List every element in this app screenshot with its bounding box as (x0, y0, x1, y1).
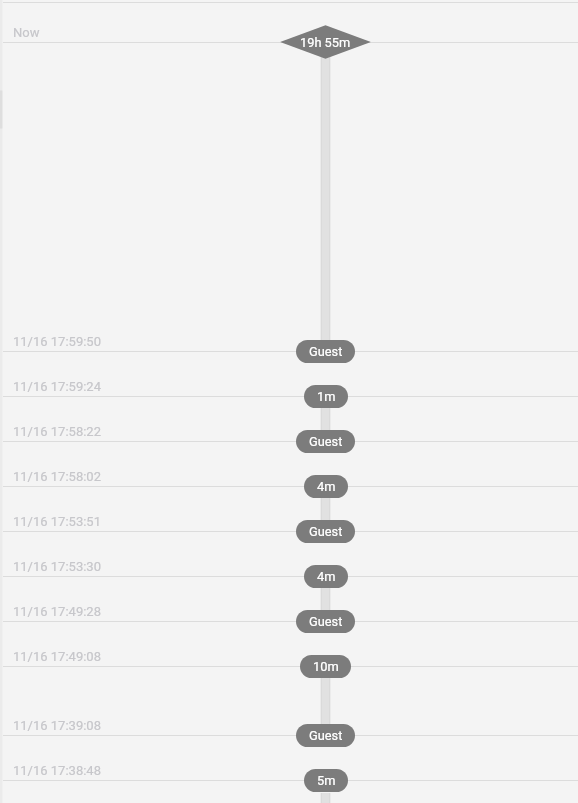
button[interactable]: 11/16 17:49:28 (3, 576, 578, 621)
button[interactable]: 1m (304, 385, 348, 408)
button[interactable]: 4m (304, 475, 348, 498)
staticText: 11/16 17:38:48 (13, 763, 101, 778)
button[interactable]: 4m (304, 565, 348, 588)
staticText: 11/16 17:59:24 (13, 379, 101, 394)
staticText: 11/16 17:58:22 (13, 424, 101, 439)
button[interactable]: 5m (304, 769, 348, 792)
staticText: Guest (309, 344, 343, 359)
button[interactable]: 11/16 17:38:48 (3, 735, 578, 780)
button[interactable]: Guest (296, 610, 355, 633)
button[interactable]: Now (3, 2, 578, 42)
staticText: 4m (317, 569, 336, 584)
button[interactable]: 11/16 17:59:24 (3, 351, 578, 396)
staticText: Now (13, 25, 40, 40)
button[interactable]: Guest (296, 724, 355, 747)
button[interactable]: 11/16 17:39:08 (3, 666, 578, 735)
staticText: Guest (309, 524, 343, 539)
button[interactable]: 11/16 17:59:50 (3, 42, 578, 351)
staticText: Guest (309, 434, 343, 449)
button[interactable]: 11/16 17:58:22 (3, 396, 578, 441)
staticText: 1m (317, 389, 336, 404)
button[interactable]: 11/16 17:58:02 (3, 441, 578, 486)
staticText: 4m (317, 479, 336, 494)
staticText: Guest (309, 728, 343, 743)
button[interactable]: 10m (300, 655, 351, 678)
staticText: 11/16 17:53:30 (13, 559, 101, 574)
staticText: 5m (317, 773, 336, 788)
button[interactable]: Guest (296, 430, 355, 453)
button[interactable]: 11/16 17:49:08 (3, 621, 578, 666)
staticText: 10m (313, 659, 339, 674)
staticText: Guest (309, 614, 343, 629)
staticText: 11/16 17:58:02 (13, 469, 101, 484)
button[interactable]: 11/16 17:53:51 (3, 486, 578, 531)
staticText: 11/16 17:49:08 (13, 649, 101, 664)
staticText: 11/16 17:59:50 (13, 334, 101, 349)
staticText: 11/16 17:39:08 (13, 718, 101, 733)
button[interactable]: Time since last connection: 19h 55m (280, 25, 371, 59)
staticText: 11/16 17:53:51 (13, 514, 101, 529)
staticText: 19h 55m (300, 35, 351, 50)
button[interactable]: Guest (296, 520, 355, 543)
button[interactable]: Guest (296, 340, 355, 363)
staticText: 11/16 17:49:28 (13, 604, 101, 619)
button[interactable]: 11/16 17:53:30 (3, 531, 578, 576)
